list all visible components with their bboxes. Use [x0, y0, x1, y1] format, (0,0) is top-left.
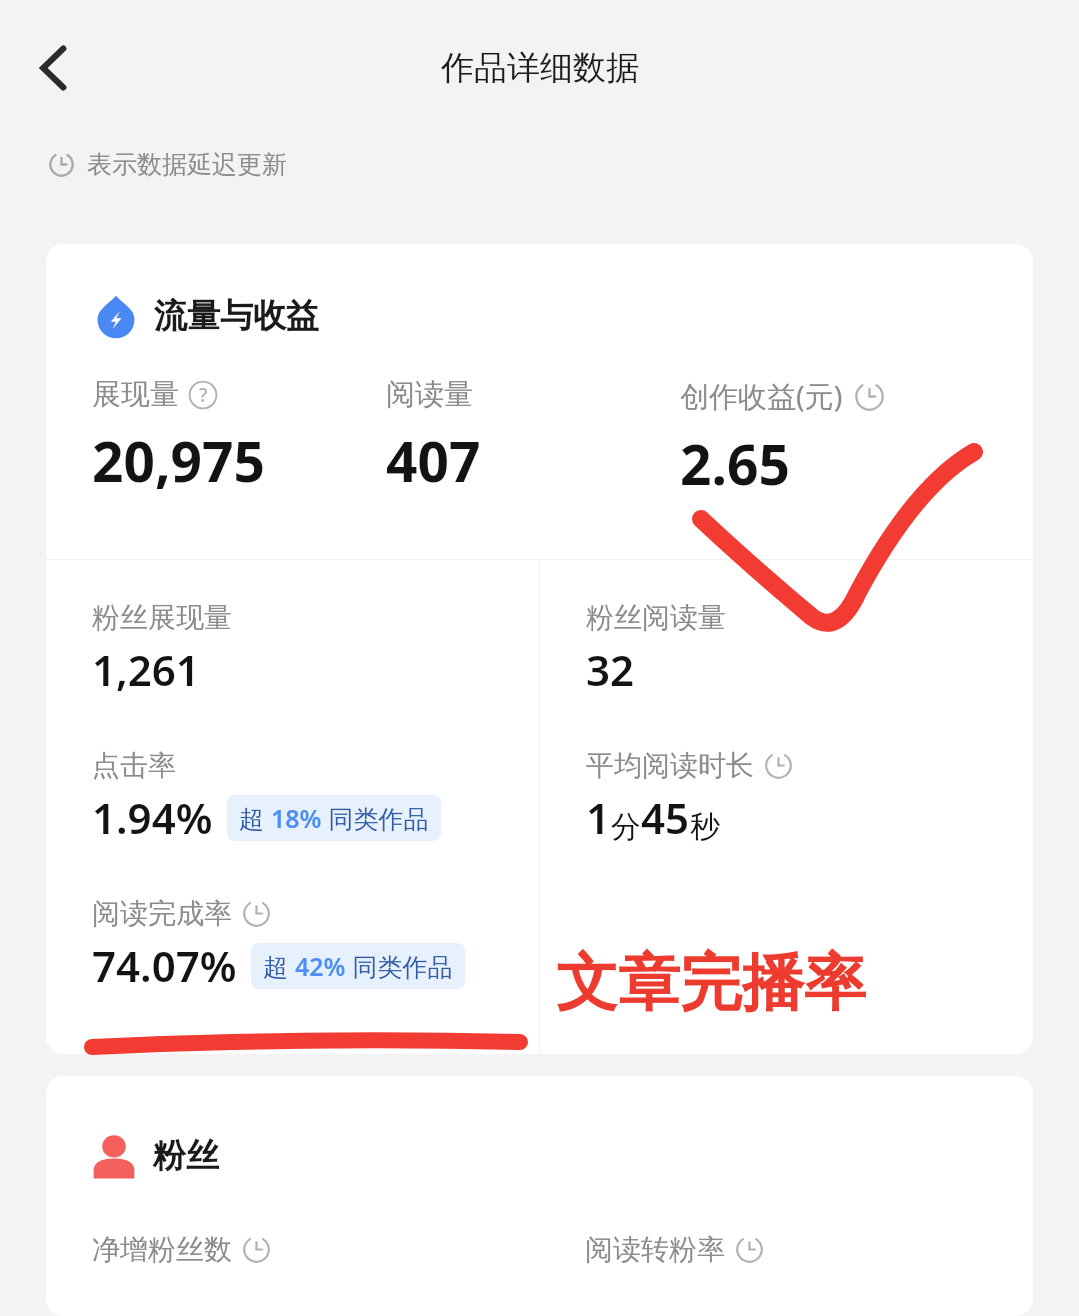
staticText: 45	[641, 789, 690, 846]
staticText: 粉丝阅读量	[586, 600, 726, 635]
button[interactable]: 净增粉丝数	[92, 1232, 539, 1267]
button[interactable]: Back	[18, 32, 90, 104]
staticText: 展现量	[92, 376, 179, 413]
button[interactable]: 阅读量	[386, 376, 680, 498]
staticText: 超	[263, 949, 295, 983]
staticText: 32	[586, 641, 635, 698]
staticText: 净增粉丝数	[92, 1232, 232, 1267]
staticText: 创作收益(元)	[680, 376, 843, 416]
staticText: 粉丝展现量	[92, 600, 232, 635]
staticText: 2.65	[680, 426, 790, 501]
staticText: 平均阅读时长	[586, 748, 754, 783]
staticText: 文章完播率	[556, 944, 866, 1022]
button[interactable]: 平均阅读时长	[586, 748, 793, 846]
staticText: 阅读量	[386, 376, 473, 413]
button[interactable]: 超	[227, 795, 441, 841]
staticText: 20,975	[92, 423, 265, 498]
staticText: 同类作品	[322, 801, 429, 835]
staticText: 点击率	[92, 748, 176, 783]
staticText: 作品详细数据	[441, 47, 639, 89]
staticText: 阅读转粉率	[585, 1232, 725, 1267]
staticText: 74.07%	[92, 937, 237, 994]
staticText: 分	[611, 808, 641, 846]
staticText: 同类作品	[346, 949, 453, 983]
staticText: 超	[239, 801, 271, 835]
button[interactable]: 粉丝展现量	[92, 600, 232, 698]
staticText: 秒	[690, 808, 720, 846]
staticText: 流量与收益	[154, 295, 319, 337]
staticText: 阅读完成率	[92, 896, 232, 931]
staticText: 1.94%	[92, 789, 213, 846]
button[interactable]: 创作收益(元)	[680, 376, 1003, 501]
button[interactable]: 点击率	[92, 748, 441, 846]
staticText: 表示数据延迟更新	[87, 149, 287, 180]
staticText: 407	[386, 423, 481, 498]
button[interactable]: 阅读转粉率	[585, 1232, 1033, 1267]
button[interactable]: 展现量	[92, 376, 386, 498]
staticText: ?	[199, 382, 208, 408]
button[interactable]: 粉丝阅读量	[586, 600, 726, 698]
staticText: 粉丝	[153, 1135, 219, 1177]
staticText: 1,261	[92, 641, 200, 698]
staticText: 42%	[295, 949, 346, 983]
staticText: 1	[586, 789, 611, 846]
staticText: 18%	[271, 801, 322, 835]
button[interactable]: 超	[251, 943, 465, 989]
button[interactable]: 阅读完成率	[92, 896, 465, 994]
